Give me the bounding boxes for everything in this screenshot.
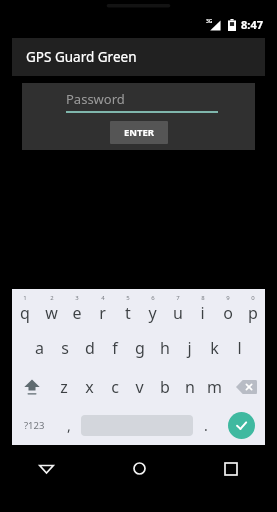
button[interactable]: n: [177, 367, 202, 406]
staticText: 1: [23, 294, 27, 302]
staticText: GPS Guard Green: [26, 48, 137, 66]
staticText: k: [210, 337, 219, 359]
staticText: o: [223, 302, 233, 324]
button[interactable]: 8: [190, 289, 215, 328]
staticText: i: [200, 302, 205, 324]
staticText: ?123: [24, 419, 45, 432]
staticText: r: [99, 302, 106, 324]
staticText: p: [248, 302, 258, 324]
staticText: 3: [75, 294, 79, 302]
staticText: 3G: [206, 18, 213, 25]
button[interactable]: g: [127, 328, 152, 367]
button[interactable]: a: [26, 328, 52, 367]
staticText: n: [185, 376, 195, 398]
button[interactable]: s: [52, 328, 77, 367]
button[interactable]: Home: [93, 450, 185, 487]
button[interactable]: m: [202, 367, 227, 406]
staticText: v: [135, 376, 144, 398]
button[interactable]: d: [77, 328, 102, 367]
button[interactable]: Recent apps: [185, 450, 277, 487]
staticText: a: [35, 337, 44, 359]
staticText: e: [72, 302, 82, 324]
staticText: .: [204, 416, 208, 435]
staticText: c: [111, 376, 119, 398]
button[interactable]: Backspace: [227, 367, 265, 406]
button[interactable]: 1: [12, 289, 38, 328]
staticText: 8:47: [241, 17, 263, 32]
button[interactable]: h: [152, 328, 177, 367]
button[interactable]: Password: [66, 90, 218, 113]
button[interactable]: v: [127, 367, 152, 406]
button[interactable]: l: [227, 328, 252, 367]
button[interactable]: ?123: [12, 406, 56, 445]
staticText: w: [45, 302, 58, 324]
button[interactable]: Enter: [228, 412, 255, 439]
staticText: ENTER: [124, 126, 155, 139]
button[interactable]: b: [152, 367, 177, 406]
button[interactable]: 2: [38, 289, 64, 328]
button[interactable]: z: [51, 367, 77, 406]
button[interactable]: 5: [115, 289, 140, 328]
button[interactable]: .: [193, 406, 218, 445]
button[interactable]: c: [102, 367, 127, 406]
button[interactable]: x: [77, 367, 102, 406]
staticText: 0: [251, 294, 255, 302]
staticText: b: [160, 376, 170, 398]
staticText: 4: [101, 294, 105, 302]
staticText: 5: [126, 294, 130, 302]
staticText: j: [187, 337, 192, 359]
staticText: d: [85, 337, 95, 359]
button[interactable]: ,: [56, 406, 81, 445]
staticText: 8: [201, 294, 205, 302]
button[interactable]: Shift: [12, 367, 51, 406]
staticText: u: [173, 302, 183, 324]
staticText: x: [85, 376, 94, 398]
button[interactable]: 6: [140, 289, 165, 328]
staticText: g: [135, 337, 145, 359]
button[interactable]: ENTER: [110, 121, 168, 144]
staticText: m: [207, 376, 222, 398]
button[interactable]: 4: [90, 289, 115, 328]
staticText: s: [61, 337, 69, 359]
staticText: t: [125, 302, 131, 324]
button[interactable]: GPS Guard Green: [12, 38, 265, 76]
button[interactable]: 3: [64, 289, 90, 328]
staticText: z: [60, 376, 68, 398]
button[interactable]: 0: [240, 289, 265, 328]
staticText: 9: [226, 294, 230, 302]
button[interactable]: j: [177, 328, 202, 367]
button[interactable]: 7: [165, 289, 190, 328]
button[interactable]: Back: [0, 450, 93, 487]
staticText: q: [20, 302, 30, 324]
staticText: f: [112, 337, 118, 359]
staticText: l: [237, 337, 242, 359]
staticText: 2: [50, 294, 54, 302]
staticText: h: [160, 337, 170, 359]
staticText: ,: [67, 416, 71, 435]
staticText: 6: [151, 294, 155, 302]
staticText: y: [148, 302, 157, 324]
button[interactable]: 9: [215, 289, 240, 328]
staticText: 7: [176, 294, 180, 302]
staticText: Password: [66, 90, 125, 108]
button[interactable]: k: [202, 328, 227, 367]
button[interactable]: f: [102, 328, 127, 367]
